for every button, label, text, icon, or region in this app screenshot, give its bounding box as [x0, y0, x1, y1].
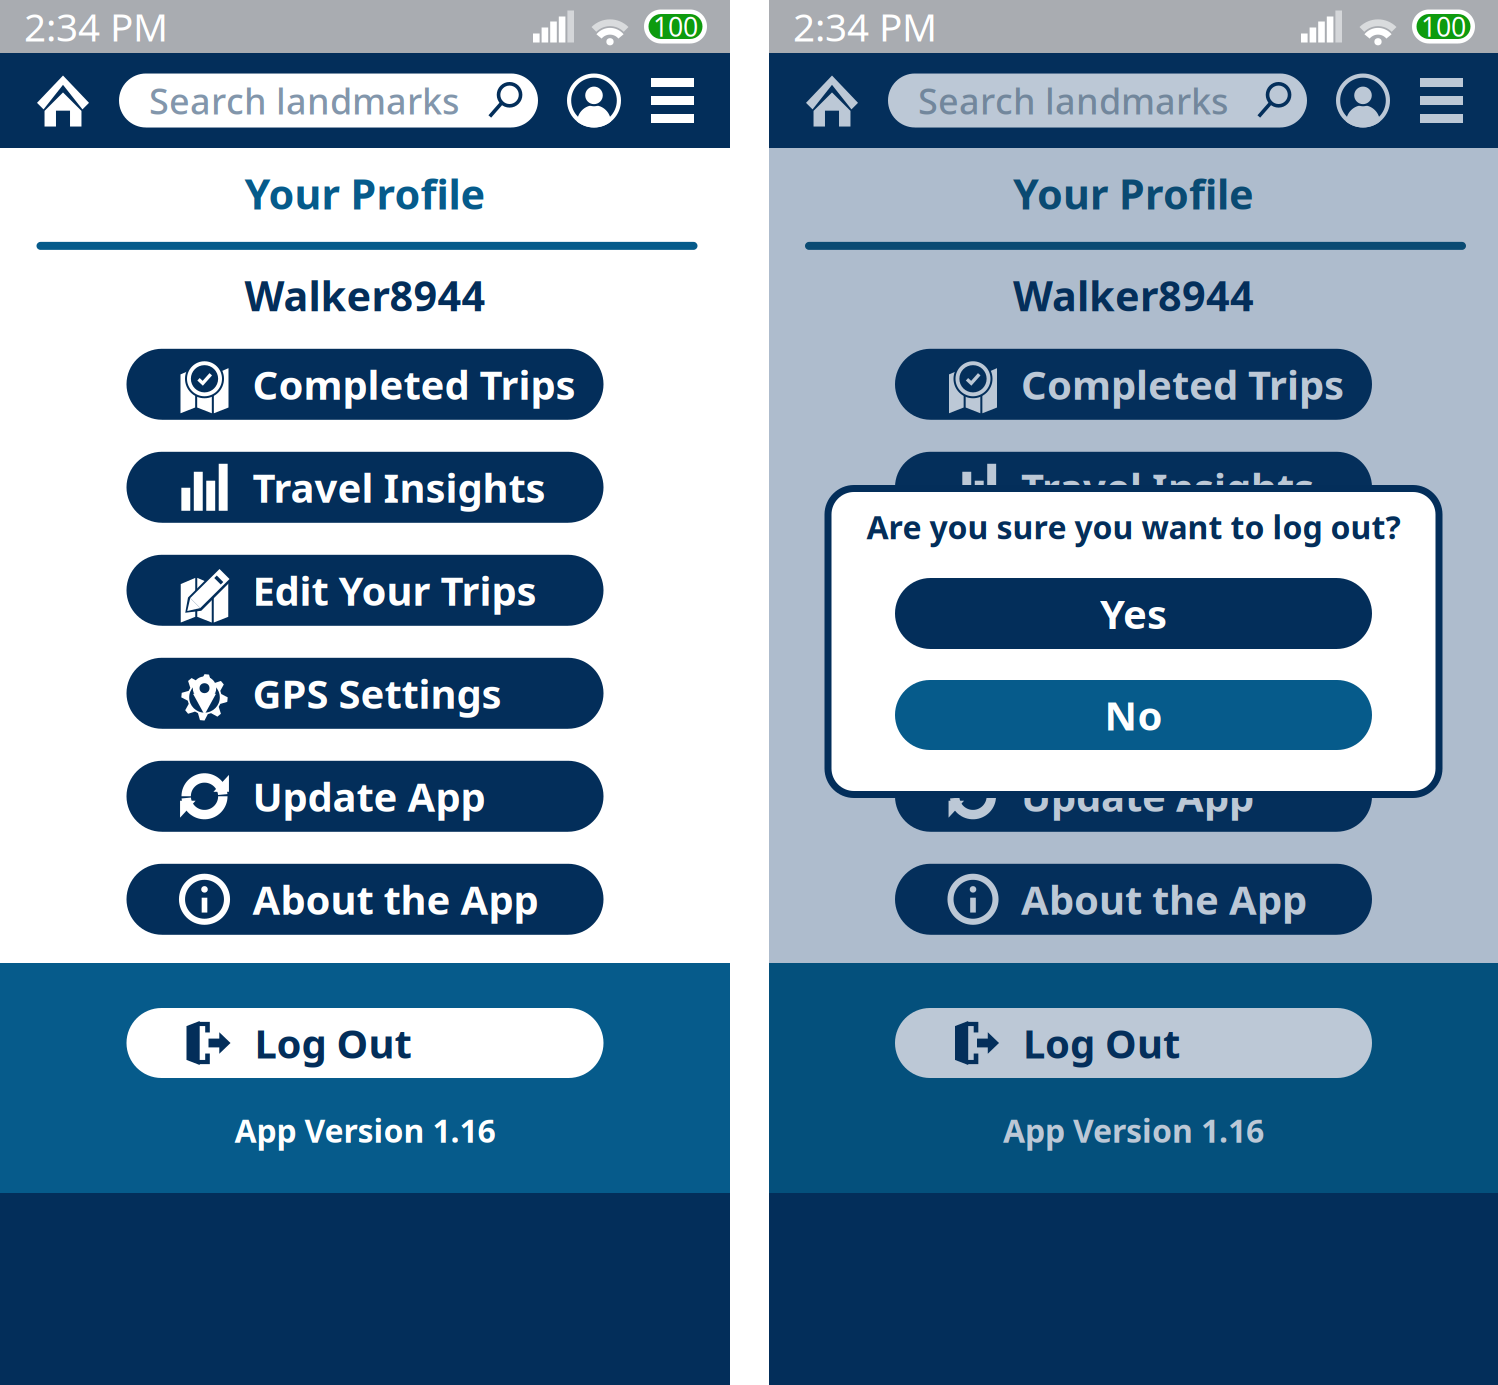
button[interactable]: About the App — [126, 864, 603, 935]
staticText: Walker8944 — [1013, 268, 1254, 323]
button[interactable]: About the App — [895, 864, 1372, 935]
staticText: Travel Insights — [1021, 461, 1314, 514]
button[interactable]: Travel Insights — [895, 452, 1372, 523]
staticText: Log Out — [254, 1016, 411, 1069]
staticText: Edit Your Trips — [1021, 564, 1305, 617]
button[interactable]: Edit Your Trips — [126, 555, 603, 626]
staticText: Yes — [1100, 587, 1167, 640]
button[interactable]: Edit Your Trips — [895, 555, 1372, 626]
staticText: 100 — [1421, 9, 1466, 44]
staticText: Update App — [252, 770, 485, 823]
staticText: Your Profile — [1013, 166, 1254, 221]
staticText: Are you sure you want to log out? — [866, 505, 1400, 548]
button[interactable]: Update App — [895, 761, 1372, 832]
staticText: App Version 1.16 — [1003, 1109, 1264, 1151]
staticText: 2:34 PM — [24, 1, 168, 52]
button[interactable]: No — [895, 680, 1372, 750]
button[interactable]: Account — [1336, 53, 1390, 148]
staticText: Completed Trips — [1021, 358, 1344, 411]
button[interactable]: Menu — [1420, 53, 1463, 148]
button[interactable]: Search landmarks — [119, 73, 538, 127]
button[interactable]: Travel Insights — [126, 452, 603, 523]
staticText: Edit Your Trips — [252, 564, 536, 617]
button[interactable]: Menu — [651, 53, 694, 148]
staticText: 2:34 PM — [793, 1, 937, 52]
staticText: No — [1104, 688, 1162, 741]
staticText: Walker8944 — [244, 268, 485, 323]
staticText: 100 — [653, 9, 698, 44]
button[interactable]: Completed Trips — [895, 349, 1372, 420]
staticText: Completed Trips — [252, 358, 575, 411]
button[interactable]: GPS Settings — [895, 658, 1372, 729]
button[interactable]: Search landmarks — [888, 73, 1307, 127]
staticText: About the App — [252, 873, 538, 926]
button[interactable]: Log Out — [895, 1008, 1372, 1078]
button[interactable]: Home — [36, 53, 90, 148]
staticText: About the App — [1021, 873, 1307, 926]
button[interactable]: Update App — [126, 761, 603, 832]
button[interactable]: Home — [805, 53, 859, 148]
button[interactable]: Completed Trips — [126, 349, 603, 420]
staticText: App Version 1.16 — [234, 1109, 495, 1151]
staticText: Log Out — [1023, 1016, 1180, 1069]
staticText: Search landmarks — [149, 77, 459, 124]
button[interactable]: Account — [567, 53, 621, 148]
staticText: GPS Settings — [252, 667, 501, 720]
button[interactable]: GPS Settings — [126, 658, 603, 729]
button[interactable]: Yes — [895, 578, 1372, 649]
staticText: Your Profile — [244, 166, 485, 221]
staticText: Search landmarks — [918, 77, 1228, 124]
staticText: Travel Insights — [252, 461, 545, 514]
staticText: GPS Settings — [1021, 667, 1270, 720]
button[interactable]: Log Out — [126, 1008, 603, 1078]
staticText: Update App — [1021, 770, 1254, 823]
